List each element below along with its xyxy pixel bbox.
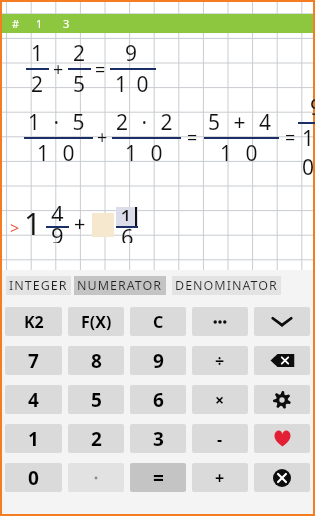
staticText: = (187, 125, 198, 150)
staticText: 9 (153, 348, 164, 374)
staticText: = (153, 465, 164, 491)
staticText: 6 (153, 387, 164, 413)
button[interactable]: Hide keyboard (254, 307, 310, 336)
button[interactable]: 0 (5, 463, 62, 492)
staticText: ÷ (215, 350, 225, 372)
staticText: 2 (73, 39, 86, 68)
button[interactable]: Backspace (254, 346, 310, 375)
staticText: 1 (24, 203, 42, 244)
button[interactable]: 9 (130, 346, 186, 375)
staticText: K2 (24, 311, 44, 333)
button[interactable]: K2 (5, 307, 62, 336)
staticText: 5 (91, 387, 102, 413)
button[interactable]: Close (254, 463, 310, 492)
staticText: NUMERATOR (77, 277, 163, 294)
staticText: 6 (121, 221, 134, 243)
button[interactable]: 1 (5, 424, 62, 453)
staticText: 9 (310, 93, 315, 122)
staticText: + (215, 467, 225, 489)
staticText: 2 (31, 70, 44, 99)
staticText: # (12, 16, 20, 31)
staticText: 1 · 5 (28, 108, 89, 137)
button[interactable]: + (192, 463, 248, 492)
staticText: 1 (28, 426, 39, 452)
staticText: 5 (73, 70, 86, 99)
button[interactable]: NUMERATOR (74, 276, 166, 295)
staticText: 2 (91, 426, 102, 452)
staticText: + (53, 57, 64, 82)
button[interactable]: INTEGER (6, 276, 71, 295)
button[interactable]: 5 (68, 385, 124, 414)
button[interactable]: 8 (68, 346, 124, 375)
staticText: = (95, 57, 106, 82)
staticText: C (153, 311, 164, 333)
button[interactable]: × (192, 385, 248, 414)
button[interactable]: Favorite (254, 424, 310, 453)
staticText: 0 (28, 465, 39, 491)
staticText: 1 (120, 202, 133, 221)
staticText: 8 (91, 348, 102, 374)
staticText: 1 (31, 39, 44, 68)
staticText: 4 (28, 387, 39, 413)
button[interactable]: 6 (130, 385, 186, 414)
staticText: 1 0 (125, 139, 167, 168)
staticText: × (215, 389, 225, 411)
button[interactable]: C (130, 307, 186, 336)
staticText: DENOMINATOR (175, 277, 278, 294)
staticText: INTEGER (9, 277, 68, 294)
button[interactable]: More (192, 307, 248, 336)
staticText: 1 0 (115, 70, 151, 99)
staticText: F(X) (81, 311, 112, 333)
staticText: 1 0 (37, 139, 79, 168)
button[interactable]: 3 (130, 424, 186, 453)
button[interactable]: F(X) (68, 307, 124, 336)
staticText: 9 (125, 39, 140, 68)
staticText: 5 + 4 (208, 108, 275, 137)
staticText: 7 (28, 348, 39, 374)
staticText: - (217, 428, 223, 450)
staticText: > (10, 217, 20, 239)
staticText: 1 (36, 16, 43, 31)
button[interactable]: = (130, 463, 186, 492)
staticText: = (285, 125, 296, 150)
staticText: 2 · 2 (116, 108, 177, 137)
staticText: 1 0 (220, 139, 262, 168)
button[interactable]: ÷ (192, 346, 248, 375)
button[interactable]: DENOMINATOR (172, 276, 281, 295)
button[interactable]: 7 (5, 346, 62, 375)
staticText: + (74, 210, 86, 237)
button[interactable]: 4 (5, 385, 62, 414)
staticText: 1 0 (302, 124, 315, 182)
button[interactable]: - (192, 424, 248, 453)
staticText: 3 (63, 16, 70, 31)
button[interactable] (68, 463, 124, 492)
staticText: + (97, 125, 108, 150)
staticText: 9 (51, 220, 64, 243)
staticText: 3 (153, 426, 164, 452)
button[interactable]: Settings (254, 385, 310, 414)
button[interactable]: 2 (68, 424, 124, 453)
staticText: 4 (51, 198, 64, 221)
